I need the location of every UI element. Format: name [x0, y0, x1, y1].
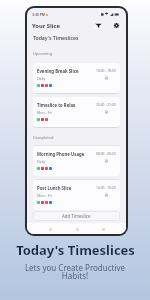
staticText: Today's Timeslices	[16, 241, 135, 259]
button[interactable]: Back	[46, 225, 54, 233]
staticText: Morning Phone Usage	[37, 151, 85, 157]
button[interactable]: Add Timeslice	[33, 211, 120, 221]
staticText: 18:00 - 18:30	[96, 68, 116, 72]
staticText: Evening Break Slice	[37, 68, 79, 74]
staticText: Lets you Create Productive Habits!	[19, 262, 131, 281]
staticText: Upcoming	[33, 51, 53, 56]
staticText: Mon - Fri	[37, 110, 52, 115]
staticText: Post Lunch Slice	[37, 185, 72, 191]
staticText: Today's Timeslices	[33, 35, 79, 42]
staticText: Timeslice to Relax	[37, 102, 76, 108]
staticText: Add Timeslice	[62, 213, 91, 219]
staticText: 08:00 - 08:30	[96, 151, 116, 155]
button[interactable]: Timeslice to Relax	[33, 97, 120, 127]
button[interactable]: Post Lunch Slice	[33, 180, 120, 210]
button[interactable]: Morning Phone Usage	[33, 146, 120, 176]
staticText: 3:30 PM	[32, 12, 45, 17]
button[interactable]: Recents	[99, 225, 107, 233]
button[interactable]: Settings	[112, 21, 121, 30]
staticText: Daily	[37, 159, 46, 164]
staticText: Your Slice	[32, 22, 60, 30]
staticText: Mon - Fri	[37, 193, 52, 198]
staticText: Daily	[37, 76, 46, 81]
staticText: Completed	[33, 135, 54, 140]
staticText: 20:00 - 21:00	[96, 102, 116, 106]
staticText: 14:00 - 14:30	[96, 185, 116, 189]
button[interactable]: Home	[73, 225, 81, 233]
button[interactable]: Filter	[94, 21, 103, 30]
button[interactable]: Evening Break Slice	[33, 63, 120, 93]
